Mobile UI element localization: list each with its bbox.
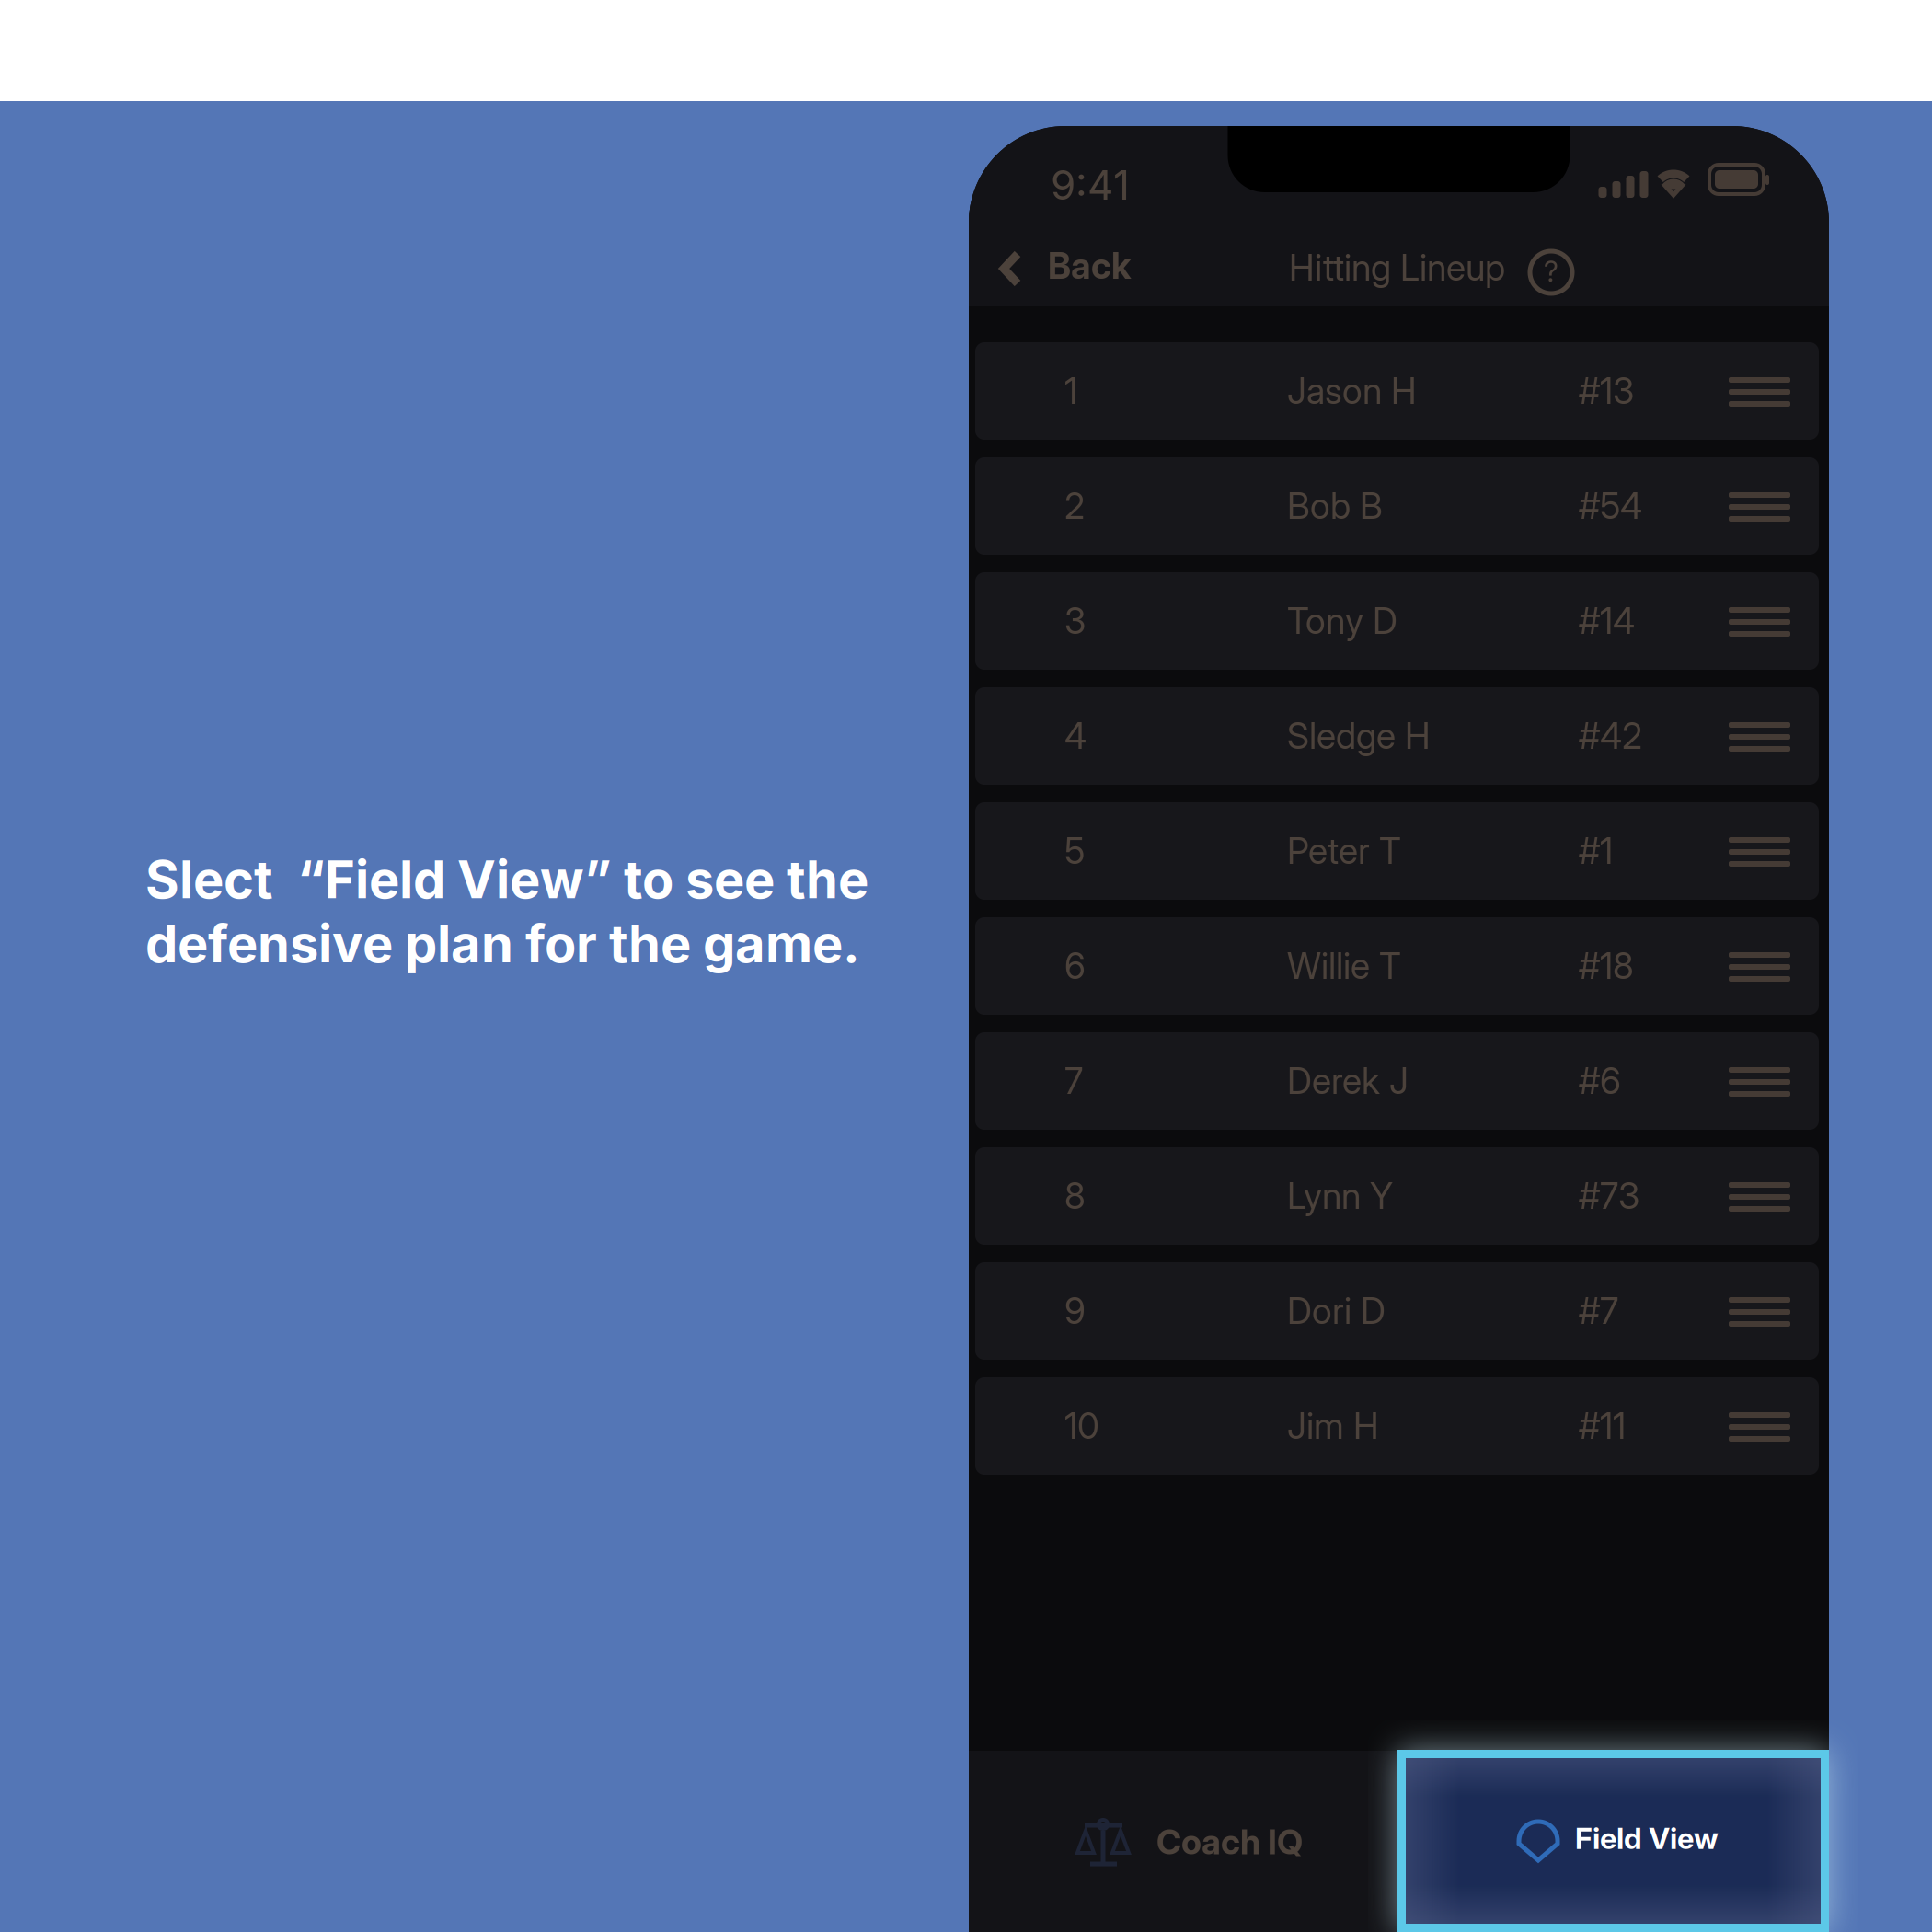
button[interactable]: 1: [975, 342, 1819, 440]
staticText: ?: [1544, 254, 1558, 288]
button[interactable]: 3: [975, 572, 1819, 670]
staticText: #18: [1579, 944, 1634, 988]
staticText: 9: [1064, 1289, 1086, 1333]
button[interactable]: Help: [1527, 248, 1575, 296]
staticText: Sledge H: [1287, 714, 1431, 758]
button[interactable]: Back: [969, 203, 1144, 306]
staticText: 7: [1064, 1059, 1083, 1103]
button[interactable]: Field View: [1397, 1750, 1829, 1932]
button[interactable]: 5: [975, 802, 1819, 900]
staticText: Dori D: [1287, 1289, 1386, 1333]
staticText: Slect “Field View” to see the: [145, 848, 868, 911]
staticText: Bob B: [1287, 484, 1383, 528]
staticText: #1: [1579, 829, 1613, 873]
button[interactable]: 7: [975, 1032, 1819, 1130]
button[interactable]: 2: [975, 457, 1819, 555]
staticText: 1: [1064, 369, 1077, 413]
staticText: Jason H: [1287, 369, 1417, 413]
staticText: 4: [1064, 714, 1087, 758]
staticText: Jim H: [1287, 1404, 1379, 1448]
staticText: Field View: [1575, 1820, 1719, 1856]
button[interactable]: 8: [975, 1147, 1819, 1245]
staticText: #54: [1579, 484, 1642, 528]
staticText: Coach IQ: [1156, 1821, 1303, 1863]
staticText: #14: [1579, 599, 1635, 643]
staticText: 6: [1064, 944, 1086, 988]
button[interactable]: 6: [975, 917, 1819, 1015]
staticText: Lynn Y: [1287, 1174, 1393, 1218]
staticText: Tony D: [1287, 599, 1397, 643]
staticText: 2: [1064, 484, 1085, 528]
staticText: 10: [1064, 1404, 1099, 1448]
button[interactable]: 9: [975, 1262, 1819, 1360]
staticText: #73: [1579, 1174, 1639, 1218]
staticText: 8: [1064, 1174, 1086, 1218]
staticText: #6: [1579, 1059, 1621, 1103]
staticText: defensive plan for the game.: [145, 912, 860, 975]
staticText: Peter T: [1287, 829, 1401, 873]
staticText: Hitting Lineup: [1289, 246, 1505, 289]
staticText: Willie T: [1287, 944, 1401, 988]
staticText: #11: [1579, 1404, 1626, 1448]
staticText: #7: [1579, 1289, 1618, 1333]
staticText: 3: [1064, 599, 1086, 643]
staticText: #13: [1579, 369, 1634, 413]
button[interactable]: 4: [975, 687, 1819, 785]
staticText: Derek J: [1287, 1059, 1409, 1103]
staticText: #42: [1579, 714, 1642, 758]
staticText: Back: [1048, 244, 1131, 287]
staticText: 5: [1064, 829, 1085, 873]
staticText: 9:41: [1051, 160, 1130, 209]
button[interactable]: 10: [975, 1377, 1819, 1475]
button[interactable]: Coach IQ: [969, 1751, 1397, 1932]
